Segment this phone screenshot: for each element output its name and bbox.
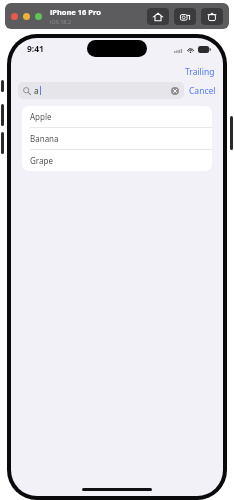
button[interactable]: Home: [147, 8, 169, 25]
staticText: 9:41: [27, 43, 44, 55]
staticText: a: [34, 85, 39, 96]
button[interactable]: Trailing: [185, 66, 215, 78]
button[interactable]: Clear text: [171, 87, 179, 95]
staticText: Trailing: [185, 66, 215, 78]
button[interactable]: Banana: [22, 128, 212, 149]
button[interactable]: Apple: [22, 106, 212, 127]
staticText: Apple: [30, 111, 52, 122]
staticText: iPhone 16 Pro: [50, 7, 101, 17]
button[interactable]: Record screen: [201, 8, 223, 25]
staticText: Cancel: [189, 85, 216, 97]
staticText: Banana: [30, 133, 59, 144]
staticText: iOS 18.2: [50, 18, 72, 25]
staticText: Grape: [30, 155, 53, 166]
button[interactable]: Screenshot: [174, 8, 196, 25]
button[interactable]: Cancel: [189, 85, 216, 97]
button[interactable]: Grape: [22, 150, 212, 171]
button[interactable]: a: [18, 82, 184, 99]
